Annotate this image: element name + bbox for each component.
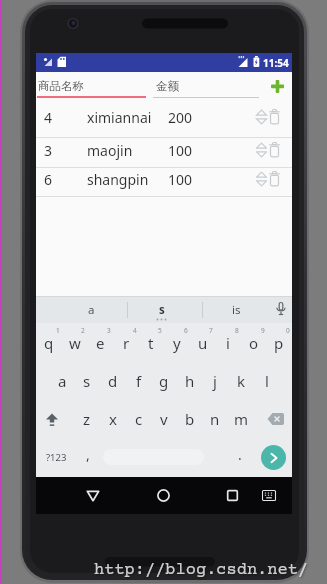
button[interactable]: j bbox=[202, 362, 228, 400]
staticText: f bbox=[136, 371, 142, 391]
button[interactable] bbox=[254, 141, 269, 159]
button[interactable]: s bbox=[128, 297, 195, 323]
staticText: 0 bbox=[286, 326, 290, 335]
button[interactable] bbox=[254, 108, 269, 126]
staticText: n bbox=[210, 409, 220, 429]
button[interactable]: d bbox=[100, 362, 126, 400]
staticText: u bbox=[198, 333, 208, 353]
button[interactable]: v bbox=[151, 400, 177, 438]
staticText: 金额 bbox=[156, 79, 179, 93]
button[interactable] bbox=[261, 445, 286, 470]
staticText: 4 bbox=[133, 326, 137, 335]
staticText: shangpin bbox=[87, 170, 149, 189]
staticText: 100 bbox=[168, 141, 193, 160]
staticText: k bbox=[237, 371, 246, 391]
button[interactable]: b bbox=[177, 400, 203, 438]
staticText: 9 bbox=[261, 326, 265, 335]
button[interactable]: z bbox=[74, 400, 100, 438]
staticText: x bbox=[109, 409, 117, 429]
button[interactable] bbox=[36, 102, 292, 137]
button[interactable] bbox=[268, 170, 281, 188]
button[interactable]: k bbox=[228, 362, 254, 400]
button[interactable] bbox=[264, 73, 291, 100]
staticText: 100 bbox=[168, 170, 193, 189]
button[interactable]: . bbox=[230, 438, 250, 476]
staticText: ximiannai bbox=[87, 108, 152, 127]
staticText: 1 bbox=[56, 326, 60, 335]
button[interactable]: a bbox=[56, 297, 126, 323]
staticText: m bbox=[234, 409, 249, 429]
staticText: 6 bbox=[44, 170, 53, 189]
staticText: 商品名称 bbox=[38, 79, 84, 93]
button[interactable]: i bbox=[215, 324, 241, 362]
button[interactable] bbox=[73, 477, 113, 514]
button[interactable] bbox=[268, 141, 281, 159]
staticText: ?123 bbox=[46, 451, 67, 464]
button[interactable]: y bbox=[164, 324, 190, 362]
staticText: 8 bbox=[235, 326, 239, 335]
button[interactable] bbox=[143, 477, 184, 514]
button[interactable]: q bbox=[36, 324, 62, 362]
staticText: p bbox=[274, 333, 284, 353]
button[interactable] bbox=[212, 477, 252, 514]
button[interactable] bbox=[269, 297, 292, 323]
button[interactable]: u bbox=[190, 324, 216, 362]
button[interactable]: t bbox=[138, 324, 164, 362]
staticText: 5 bbox=[158, 326, 162, 335]
staticText: a bbox=[58, 371, 67, 391]
button[interactable]: r bbox=[113, 324, 139, 362]
button[interactable]: a bbox=[49, 362, 75, 400]
staticText: 11:54 bbox=[263, 56, 289, 70]
button[interactable] bbox=[36, 137, 292, 167]
staticText: w bbox=[69, 333, 81, 353]
staticText: 3 bbox=[44, 141, 53, 160]
button[interactable]: o bbox=[241, 324, 267, 362]
staticText: l bbox=[265, 371, 269, 391]
button[interactable]: g bbox=[151, 362, 177, 400]
button[interactable] bbox=[38, 400, 66, 438]
button[interactable] bbox=[254, 170, 269, 188]
staticText: 4 bbox=[44, 108, 53, 127]
button[interactable]: n bbox=[202, 400, 228, 438]
button[interactable]: w bbox=[62, 324, 88, 362]
button[interactable]: s bbox=[74, 362, 100, 400]
staticText: , bbox=[86, 445, 90, 464]
staticText: is bbox=[232, 302, 241, 318]
staticText: y bbox=[173, 333, 181, 353]
staticText: e bbox=[96, 333, 105, 353]
staticText: http://blog.csdn.net/ bbox=[94, 561, 309, 580]
staticText: s bbox=[83, 371, 91, 391]
staticText: d bbox=[108, 371, 118, 391]
button[interactable]: m bbox=[228, 400, 254, 438]
button[interactable] bbox=[36, 167, 292, 196]
button[interactable]: is bbox=[203, 297, 269, 323]
button[interactable]: h bbox=[177, 362, 203, 400]
staticText: s bbox=[159, 302, 165, 318]
button[interactable]: ?123 bbox=[40, 438, 72, 476]
button[interactable]: f bbox=[126, 362, 152, 400]
staticText: a bbox=[88, 302, 95, 318]
staticText: maojin bbox=[87, 141, 133, 160]
staticText: h bbox=[185, 371, 195, 391]
button[interactable]: p bbox=[266, 324, 292, 362]
staticText: r bbox=[123, 333, 130, 353]
button[interactable] bbox=[268, 108, 281, 126]
staticText: j bbox=[213, 371, 217, 391]
staticText: v bbox=[160, 409, 168, 429]
button[interactable]: x bbox=[100, 400, 126, 438]
button[interactable]: l bbox=[254, 362, 280, 400]
button[interactable] bbox=[260, 400, 290, 438]
staticText: z bbox=[83, 409, 91, 429]
button[interactable]: e bbox=[87, 324, 113, 362]
staticText: 7 bbox=[209, 326, 213, 335]
staticText: q bbox=[44, 333, 54, 353]
staticText: c bbox=[135, 409, 143, 429]
staticText: 6 bbox=[184, 326, 188, 335]
button[interactable]: c bbox=[126, 400, 152, 438]
staticText: 200 bbox=[168, 108, 193, 127]
button[interactable]: , bbox=[78, 438, 98, 476]
staticText: i bbox=[226, 333, 230, 353]
button[interactable] bbox=[256, 477, 282, 514]
staticText: g bbox=[159, 371, 169, 391]
